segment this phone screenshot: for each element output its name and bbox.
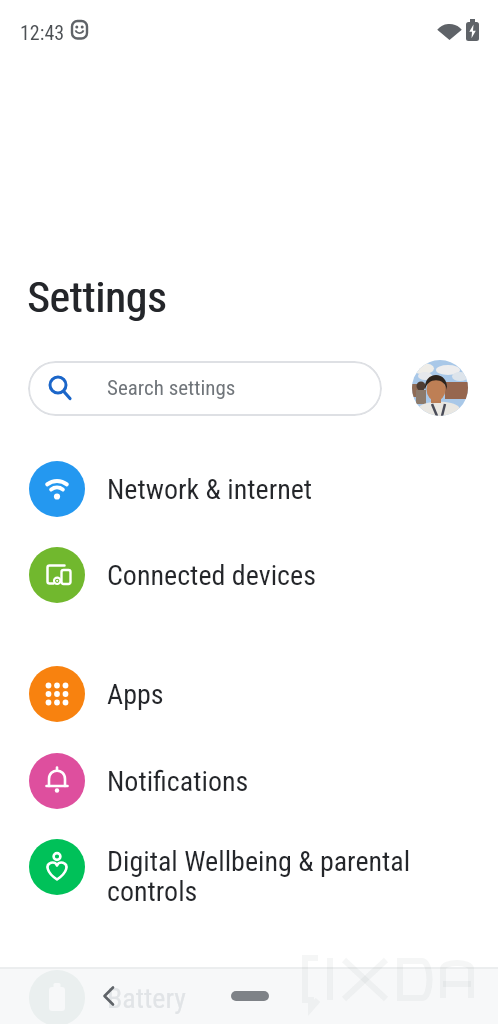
staticText: Battery (107, 982, 186, 1015)
staticText: 12:43 (20, 21, 65, 44)
staticText: Notifications (107, 765, 249, 798)
staticText: Apps (107, 678, 164, 711)
button[interactable]: Digital Wellbeing & parental controls (0, 823, 498, 911)
staticText: Connected devices (107, 559, 316, 592)
button[interactable] (221, 982, 279, 1010)
button[interactable]: Apps (0, 650, 498, 738)
button[interactable]: Network & internet (0, 445, 498, 533)
button[interactable]: Connected devices (0, 531, 498, 619)
staticText: Settings (28, 272, 168, 322)
staticText: Search settings (107, 376, 236, 401)
button[interactable]: Battery (0, 954, 498, 1024)
staticText: Settings (27, 272, 167, 322)
staticText: Digital Wellbeing & parental controls (107, 845, 411, 908)
button[interactable] (93, 976, 125, 1016)
button[interactable] (412, 360, 468, 416)
button[interactable]: Search settings (28, 361, 382, 416)
button[interactable]: Notifications (0, 737, 498, 825)
staticText: Network & internet (107, 473, 313, 506)
